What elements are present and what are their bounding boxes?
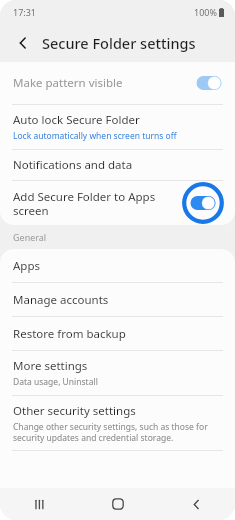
staticText: Make pattern visible bbox=[13, 75, 123, 91]
staticText: Lock automatically when screen turns off bbox=[13, 130, 177, 142]
button[interactable]: Notifications and data bbox=[0, 150, 235, 180]
staticText: Notifications and data bbox=[13, 157, 133, 173]
staticText: Restore from backup bbox=[13, 326, 126, 342]
button[interactable]: Restore from backup bbox=[0, 317, 235, 350]
staticText: Manage accounts bbox=[13, 292, 109, 308]
staticText: Auto lock Secure Folder bbox=[13, 112, 140, 128]
button[interactable]: Toggle bbox=[194, 68, 224, 98]
staticText: Data usage, Uninstall bbox=[13, 376, 98, 388]
button[interactable]: Auto lock Secure Folder bbox=[0, 105, 235, 149]
staticText: 17:31 bbox=[13, 6, 37, 18]
staticText: More settings bbox=[13, 358, 88, 374]
button[interactable]: Home bbox=[79, 488, 157, 520]
button[interactable]: Apps bbox=[0, 249, 235, 282]
staticText: Secure Folder settings bbox=[42, 33, 196, 53]
staticText: Apps bbox=[13, 258, 41, 274]
button[interactable]: Back bbox=[157, 488, 235, 520]
button[interactable]: Back bbox=[12, 32, 34, 54]
button[interactable]: Recent apps bbox=[0, 488, 79, 520]
button[interactable]: Make pattern visible bbox=[0, 62, 235, 104]
button[interactable]: Manage accounts bbox=[0, 283, 235, 316]
button[interactable]: Toggle bbox=[182, 182, 224, 224]
button[interactable]: Other security settings bbox=[0, 396, 235, 450]
staticText: General bbox=[13, 231, 47, 243]
staticText: Add Secure Folder to Apps screen bbox=[13, 189, 156, 218]
button[interactable]: Add Secure Folder to Apps screen bbox=[0, 181, 235, 225]
staticText: 100% bbox=[194, 6, 217, 18]
staticText: Other security settings bbox=[13, 403, 136, 419]
button[interactable]: More settings bbox=[0, 351, 235, 395]
staticText: Change other security settings, such as … bbox=[13, 421, 208, 443]
